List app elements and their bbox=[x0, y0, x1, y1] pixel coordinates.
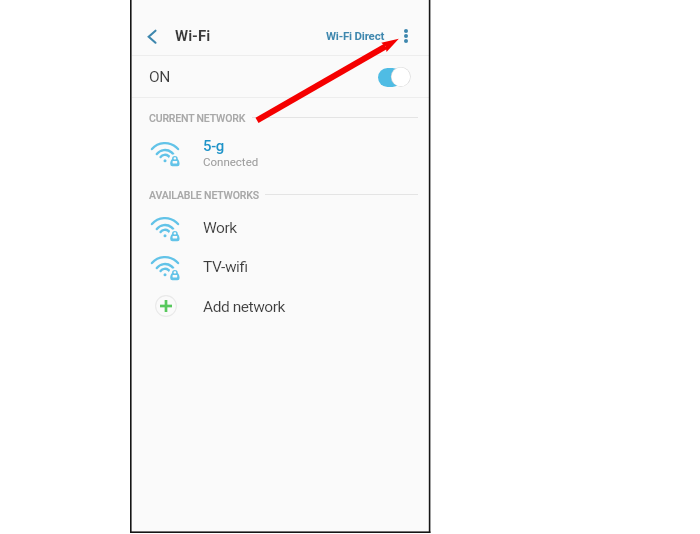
staticText: Wi-Fi bbox=[175, 27, 211, 45]
staticText: Connected bbox=[203, 155, 259, 168]
button[interactable]: Navigate back bbox=[132, 8, 166, 63]
button[interactable]: 5-g bbox=[132, 133, 429, 176]
button[interactable]: More options bbox=[397, 8, 415, 63]
staticText: AVAILABLE NETWORKS bbox=[149, 189, 259, 201]
staticText: Wi-Fi Direct bbox=[326, 29, 385, 42]
button[interactable]: Wi-Fi Direct bbox=[324, 20, 387, 51]
button[interactable]: TV-wifi bbox=[132, 249, 429, 288]
staticText: TV-wifi bbox=[203, 258, 248, 276]
staticText: 5-g bbox=[203, 137, 225, 155]
staticText: CURRENT NETWORK bbox=[149, 112, 246, 124]
staticText: ON bbox=[149, 68, 170, 86]
staticText: Add network bbox=[203, 298, 285, 316]
button[interactable]: Add network bbox=[132, 287, 429, 325]
button[interactable]: ON bbox=[132, 56, 429, 97]
button[interactable]: Work bbox=[132, 210, 429, 249]
staticText: Work bbox=[203, 219, 237, 237]
